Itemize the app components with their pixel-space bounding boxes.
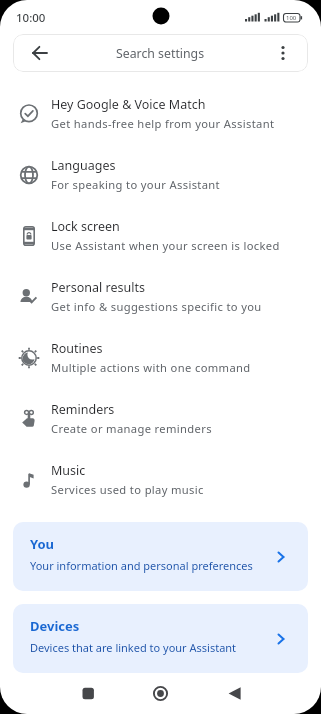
staticText: Devices that are linked to your Assistan… [30, 640, 237, 655]
button[interactable] [28, 41, 52, 65]
button[interactable] [214, 673, 321, 714]
staticText: Search settings [116, 45, 205, 62]
button[interactable]: Routines [0, 327, 321, 388]
button[interactable]: Personal results [0, 266, 321, 327]
button[interactable]: Languages [0, 144, 321, 205]
button[interactable]: You [13, 522, 308, 591]
staticText: You [30, 535, 55, 553]
button[interactable]: Devices [13, 604, 308, 673]
staticText: 10:00 [16, 10, 46, 26]
staticText: Languages [51, 157, 116, 174]
button[interactable]: Music [0, 449, 321, 510]
staticText: Routines [51, 340, 103, 357]
button[interactable]: Lock screen [0, 205, 321, 266]
staticText: Get info & suggestions specific to you [51, 299, 262, 314]
staticText: Reminders [51, 401, 115, 418]
staticText: Your information and personal preference… [30, 558, 253, 573]
staticText: Multiple actions with one command [51, 360, 251, 375]
button[interactable]: Hey Google & Voice Match [0, 83, 321, 144]
button[interactable]: Search settings [13, 34, 308, 72]
staticText: 100 [286, 14, 297, 22]
staticText: Lock screen [51, 218, 120, 235]
button[interactable]: Reminders [0, 388, 321, 449]
staticText: Personal results [51, 279, 145, 296]
button[interactable] [107, 673, 214, 714]
staticText: Get hands-free help from your Assistant [51, 116, 275, 131]
button[interactable] [0, 673, 107, 714]
staticText: Create or manage reminders [51, 421, 212, 436]
staticText: Services used to play music [51, 482, 204, 497]
button[interactable] [272, 42, 294, 64]
staticText: For speaking to your Assistant [51, 177, 221, 192]
staticText: Devices [30, 617, 80, 635]
staticText: Use Assistant when your screen is locked [51, 238, 280, 253]
staticText: Hey Google & Voice Match [51, 96, 206, 113]
staticText: Music [51, 462, 86, 479]
